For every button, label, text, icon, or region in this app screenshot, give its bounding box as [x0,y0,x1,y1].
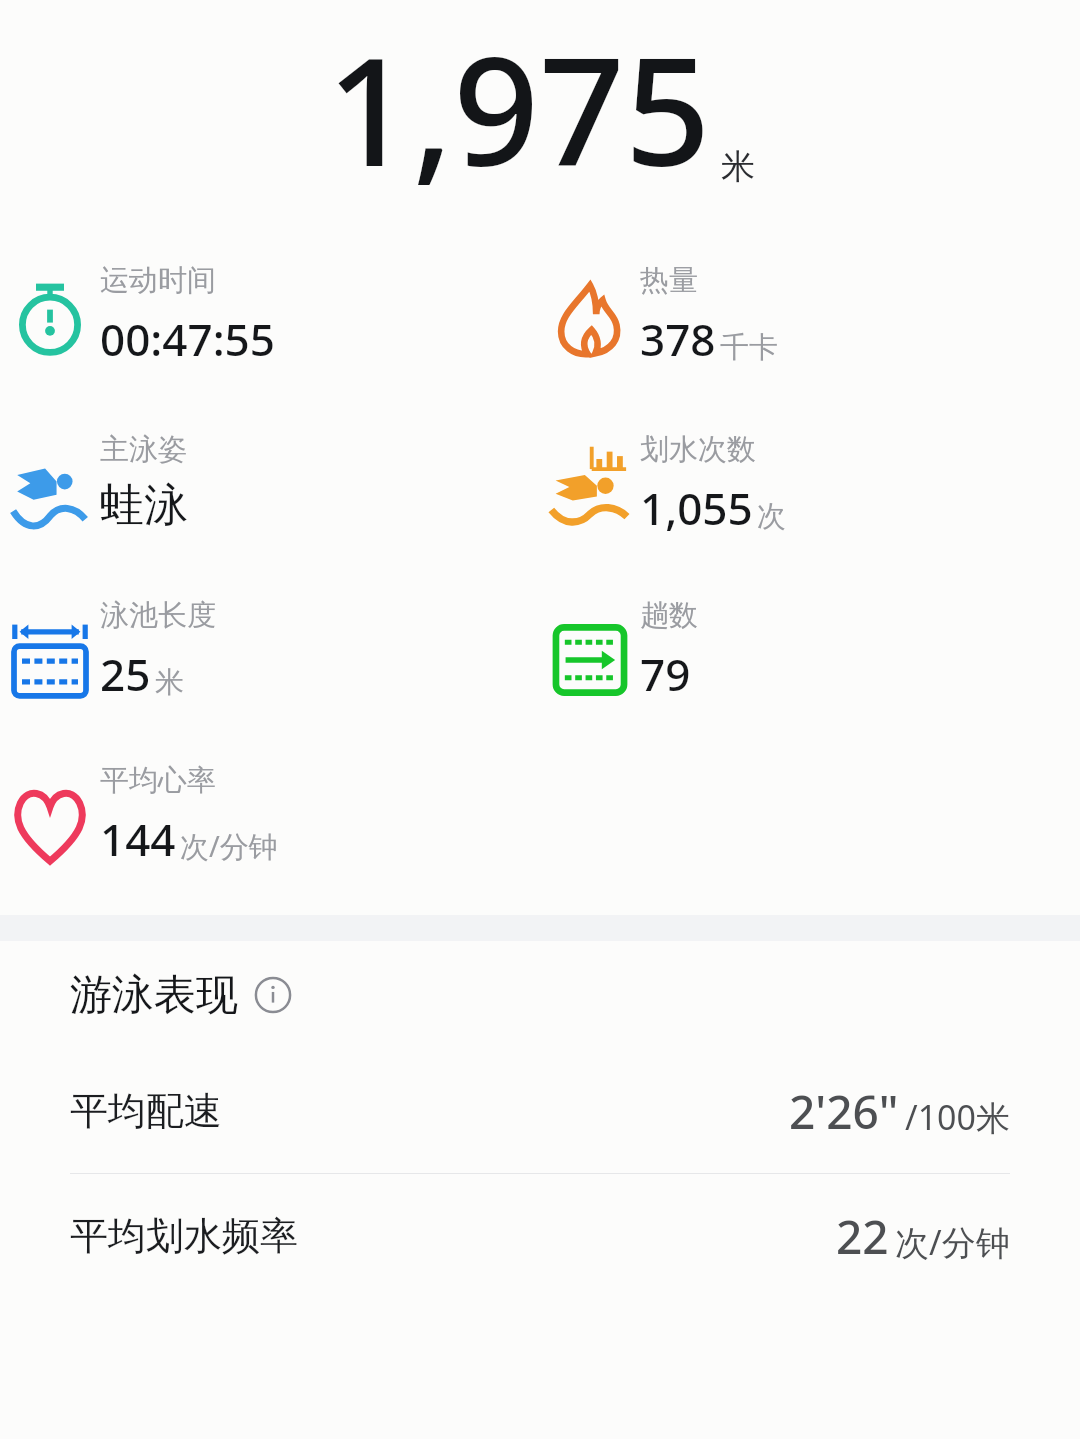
staticText: 次 [757,498,786,535]
button[interactable]: Pool length [0,597,540,704]
staticText: 米 [721,145,755,188]
button[interactable]: Laps [540,597,1080,704]
staticText: 主泳姿 [100,431,187,468]
other: Laps [540,623,640,697]
staticText: 平均心率 [100,762,216,799]
button[interactable]: Stroke count [540,431,1080,538]
staticText: 次/分钟 [895,1219,1010,1265]
staticText: 趟数 [640,597,698,634]
staticText: 划水次数 [640,431,756,468]
staticText: 平均配速 [70,1087,222,1135]
staticText: 79 [640,644,691,704]
button[interactable]: Duration [0,262,540,369]
staticText: 2'26" [789,1080,899,1143]
other: Calories [540,280,640,358]
staticText: 00:47:55 [100,309,275,369]
other: Pool length [0,619,100,699]
button[interactable]: Calories [540,262,1080,369]
staticText: 热量 [640,262,698,299]
staticText: 游泳表现 [70,969,238,1022]
staticText: 米 [155,664,184,701]
button[interactable]: Main stroke [0,431,540,539]
button[interactable]: 游泳表现 [0,941,1080,1049]
other: Main stroke [0,457,100,539]
button[interactable]: 平均配速 [0,1049,1080,1173]
button[interactable]: 平均划水频率 [0,1174,1080,1298]
staticText: 378 [640,309,716,369]
button[interactable]: Average heart rate [0,762,540,869]
other: Stroke count [540,445,640,531]
staticText: 次/分钟 [180,826,278,866]
staticText: 25 [100,644,151,704]
staticText: 千卡 [720,329,778,366]
staticText: /100米 [905,1094,1010,1140]
staticText: 平均划水频率 [70,1212,298,1260]
other: Duration [0,278,100,358]
staticText: 1,055 [640,478,753,538]
other: Average heart rate [0,784,100,866]
staticText: 144 [100,809,176,869]
staticText: 1,975 [326,6,711,210]
staticText: 泳池长度 [100,597,216,634]
other: About swimming performance [254,976,292,1014]
staticText: 运动时间 [100,262,216,299]
staticText: 22 [836,1205,889,1268]
staticText: 蛙泳 [100,478,188,533]
